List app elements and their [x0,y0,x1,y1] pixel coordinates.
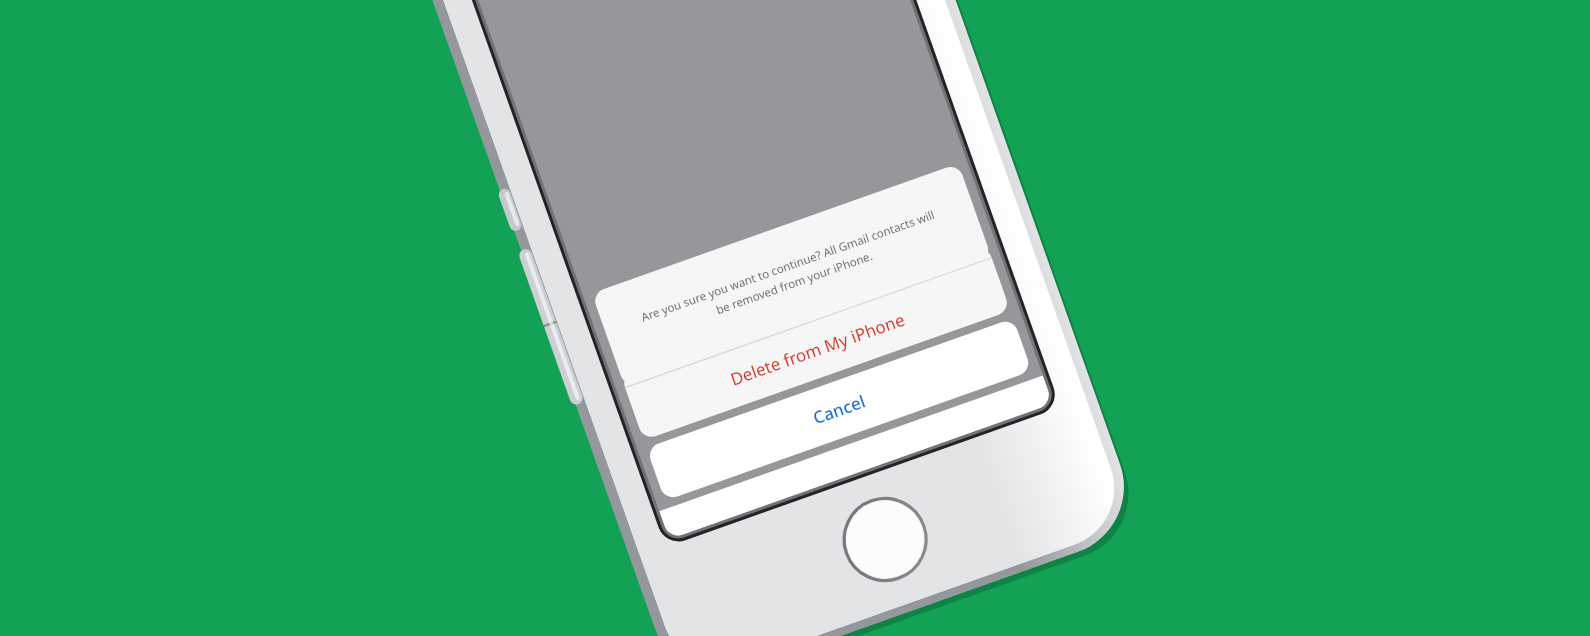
button[interactable]: iPhone showing Delete Account action she… [0,0,1590,636]
